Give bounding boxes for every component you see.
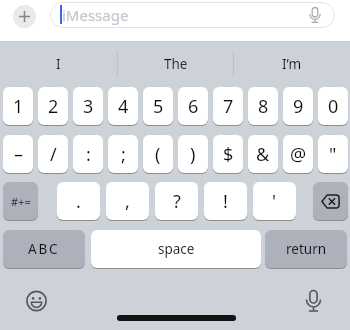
staticText: 8 [258, 94, 269, 119]
button[interactable]: : [73, 135, 103, 173]
button[interactable]: I [0, 44, 117, 84]
staticText: 3 [83, 94, 94, 119]
button[interactable]: – [3, 135, 33, 173]
button[interactable]: ! [204, 182, 247, 220]
staticText: $ [223, 142, 234, 167]
button[interactable]: 3 [73, 87, 103, 125]
staticText: 9 [293, 94, 304, 119]
button[interactable]: ) [178, 135, 208, 173]
staticText: ( [155, 142, 161, 167]
staticText: . [76, 189, 81, 214]
button[interactable]: 0 [318, 87, 348, 125]
staticText: " [329, 142, 337, 167]
button[interactable]: ? [155, 182, 198, 220]
button[interactable]: 5 [143, 87, 173, 125]
staticText: ) [190, 142, 196, 167]
button[interactable] [313, 182, 348, 220]
staticText: 0 [328, 94, 339, 119]
staticText: ? [173, 189, 181, 214]
button[interactable]: & [248, 135, 278, 173]
staticText: @ [290, 142, 307, 167]
staticText: 2 [48, 94, 59, 119]
button[interactable]: $ [213, 135, 243, 173]
staticText: 6 [188, 94, 199, 119]
button[interactable]: ; [108, 135, 138, 173]
staticText: iMessage [62, 5, 129, 25]
button[interactable]: ( [143, 135, 173, 173]
staticText: ! [223, 189, 228, 214]
button[interactable]: ABC [3, 230, 85, 268]
staticText: 4 [118, 94, 129, 119]
staticText: ; [121, 142, 126, 167]
button[interactable]: The [117, 44, 234, 84]
button[interactable] [303, 288, 325, 316]
button[interactable]: return [265, 230, 347, 268]
button[interactable]: 1 [3, 87, 33, 125]
button[interactable] [13, 5, 36, 28]
button[interactable]: space [91, 230, 261, 268]
button[interactable]: " [318, 135, 348, 173]
staticText: : [86, 142, 91, 167]
button[interactable]: , [106, 182, 149, 220]
staticText: return [286, 240, 327, 258]
button[interactable]: / [38, 135, 68, 173]
staticText: I’m [282, 55, 302, 73]
button[interactable] [24, 288, 50, 314]
staticText: 5 [153, 94, 164, 119]
staticText: The [164, 55, 188, 73]
button[interactable]: I’m [233, 44, 350, 84]
staticText: ABC [28, 240, 60, 258]
button[interactable]: 7 [213, 87, 243, 125]
staticText: – [14, 142, 23, 167]
button[interactable]: 6 [178, 87, 208, 125]
button[interactable]: #+= [3, 182, 38, 220]
button[interactable]: 8 [248, 87, 278, 125]
staticText: 1 [13, 94, 24, 119]
staticText: space [158, 240, 195, 258]
button[interactable]: 2 [38, 87, 68, 125]
button[interactable]: . [57, 182, 100, 220]
button[interactable]: @ [283, 135, 313, 173]
staticText: #+= [11, 194, 31, 209]
staticText: / [50, 142, 57, 167]
staticText: 7 [223, 94, 234, 119]
button[interactable]: 9 [283, 87, 313, 125]
staticText: I [56, 55, 61, 73]
button[interactable]: 4 [108, 87, 138, 125]
staticText: , [125, 189, 130, 214]
staticText: & [256, 142, 270, 167]
button[interactable]: ' [253, 182, 296, 220]
button[interactable]: iMessage [50, 2, 335, 28]
staticText: ' [272, 189, 277, 214]
